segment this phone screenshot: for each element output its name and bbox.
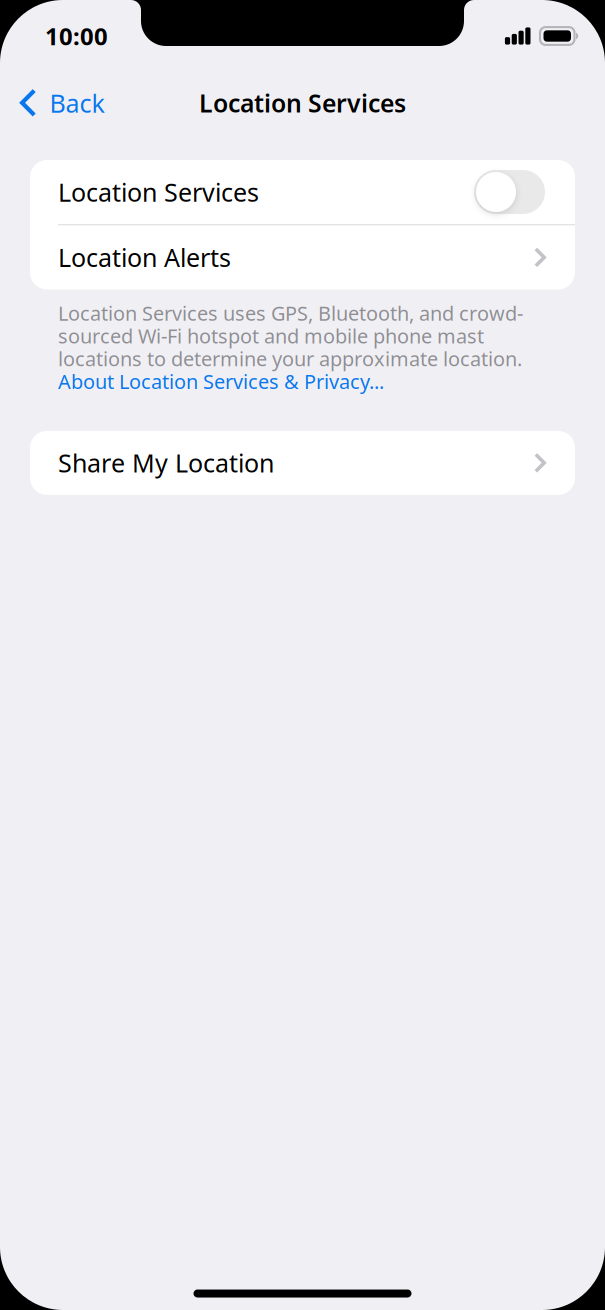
staticText: Location Alerts <box>58 240 231 274</box>
staticText: 10:00 <box>45 20 108 52</box>
button[interactable]: Location Alerts <box>30 225 575 289</box>
staticText: Back <box>49 86 104 120</box>
button[interactable]: Back <box>0 72 122 134</box>
staticText: About Location Services & Privacy... <box>58 368 384 395</box>
staticText: Location Services <box>58 175 259 209</box>
staticText: Location Services <box>199 86 406 120</box>
staticText: Location Services uses GPS, Bluetooth, a… <box>58 299 523 372</box>
button[interactable]: Share My Location <box>30 431 575 495</box>
button[interactable]: About Location Services & Privacy... <box>58 368 384 395</box>
staticText: Share My Location <box>58 446 274 480</box>
button[interactable]: Location Services <box>30 160 575 224</box>
